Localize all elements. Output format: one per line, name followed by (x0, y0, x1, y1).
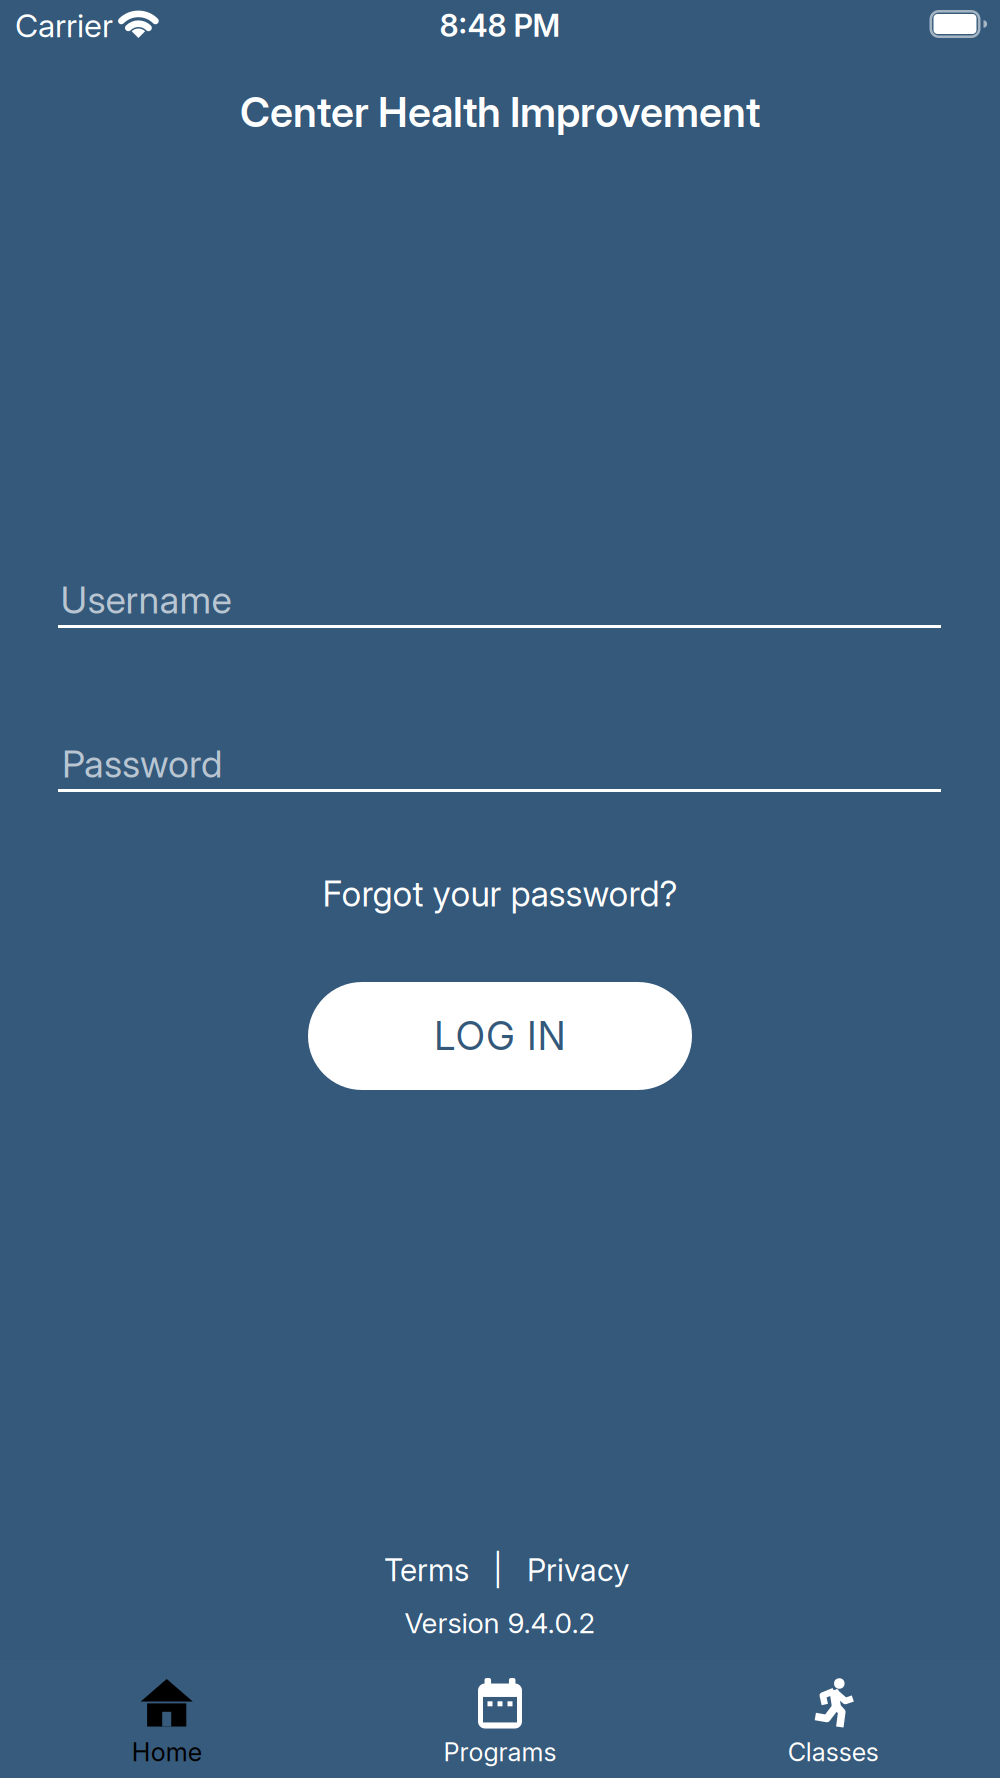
staticText: LOG IN (434, 1013, 566, 1059)
button[interactable]: Password (58, 720, 941, 792)
staticText: Version 9.4.0.2 (404, 1606, 595, 1639)
staticText: Programs (443, 1737, 556, 1767)
button[interactable]: Home (0, 1660, 334, 1778)
staticText: Center Health Improvement (240, 88, 760, 136)
button[interactable]: Programs (333, 1660, 667, 1778)
staticText: Password (62, 742, 222, 786)
staticText: Home (132, 1737, 202, 1767)
button[interactable]: LOG IN (308, 982, 692, 1090)
staticText: Carrier (15, 7, 113, 44)
staticText: Username (60, 578, 231, 622)
staticText: Forgot your password? (322, 874, 677, 914)
staticText: Privacy (527, 1552, 629, 1588)
button[interactable]: Forgot your password? (322, 874, 677, 914)
button[interactable]: Terms (384, 1552, 469, 1588)
staticText: 8:48 PM (439, 7, 560, 44)
button[interactable]: Privacy (527, 1552, 629, 1588)
staticText: Terms (384, 1552, 469, 1588)
staticText: Classes (788, 1737, 879, 1767)
staticText: | (493, 1552, 503, 1588)
button[interactable]: Classes (666, 1660, 1000, 1778)
button[interactable]: Username (58, 556, 941, 628)
